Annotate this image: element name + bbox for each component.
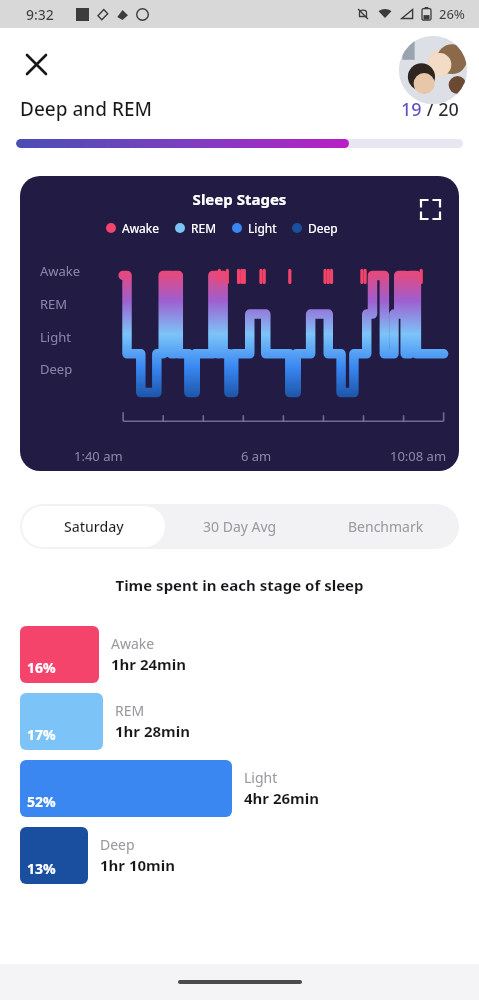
staticText: 16% xyxy=(27,658,56,677)
button[interactable]: Sleep Stages xyxy=(20,176,459,471)
staticText: 26% xyxy=(439,5,465,23)
staticText: 1hr 10min xyxy=(100,855,175,875)
staticText: Benchmark xyxy=(348,517,424,536)
staticText: 9:32 xyxy=(26,5,54,24)
staticText: Deep xyxy=(100,835,135,854)
button[interactable]: 13% xyxy=(0,825,479,885)
staticText: Light xyxy=(244,768,278,787)
staticText: 1:40 am xyxy=(74,447,123,465)
staticText: Awake xyxy=(122,220,160,236)
staticText: Sleep Stages xyxy=(20,189,459,209)
staticText: 52% xyxy=(27,792,56,811)
staticText: / 20 xyxy=(422,97,459,122)
button[interactable]: 16% xyxy=(0,624,479,684)
staticText: Saturday xyxy=(64,517,124,536)
staticText: 13% xyxy=(27,859,56,878)
staticText: REM xyxy=(115,701,145,720)
staticText: REM xyxy=(40,295,68,313)
staticText: 4hr 26min xyxy=(244,788,319,808)
button[interactable]: 30 Day Avg xyxy=(167,504,313,549)
staticText: 6 am xyxy=(241,447,272,465)
staticText: Light xyxy=(248,220,277,236)
staticText: 1hr 24min xyxy=(111,654,186,674)
button[interactable]: Close xyxy=(16,44,56,84)
button[interactable]: Benchmark xyxy=(313,504,459,549)
staticText: Deep and REM xyxy=(20,96,152,122)
button[interactable]: 52% xyxy=(0,758,479,818)
staticText: 30 Day Avg xyxy=(203,517,277,536)
staticText: 19 xyxy=(401,97,422,122)
staticText: Awake xyxy=(40,262,81,280)
staticText: 17% xyxy=(27,725,56,744)
staticText: Awake xyxy=(111,634,155,653)
button[interactable]: Expand chart xyxy=(417,196,443,222)
staticText: Deep xyxy=(40,360,73,378)
button[interactable]: Saturday xyxy=(22,506,165,547)
staticText: Light xyxy=(40,328,71,346)
staticText: REM xyxy=(191,220,217,236)
staticText: Time spent in each stage of sleep xyxy=(0,575,479,595)
button[interactable]: 17% xyxy=(0,691,479,751)
staticText: 10:08 am xyxy=(390,447,447,465)
button[interactable]: Profile xyxy=(399,36,467,104)
staticText: 1hr 28min xyxy=(115,721,190,741)
staticText: Deep xyxy=(308,220,338,236)
